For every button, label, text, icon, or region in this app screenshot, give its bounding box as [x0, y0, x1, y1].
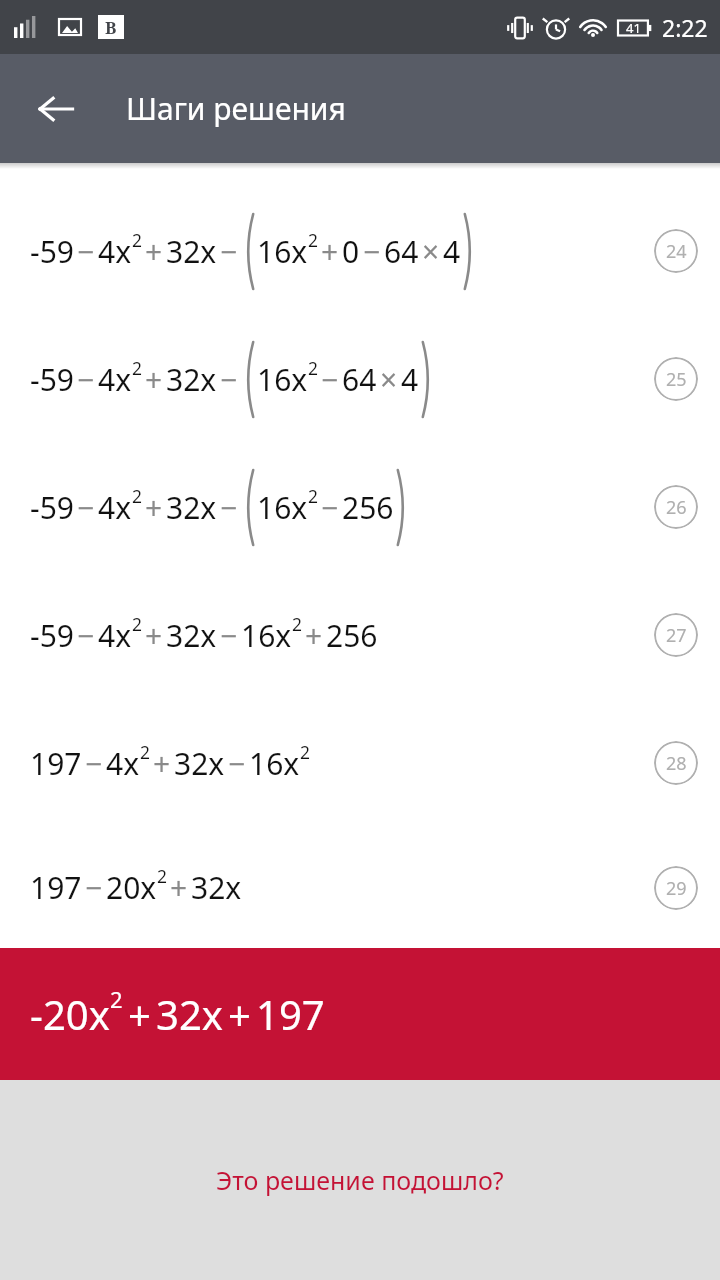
staticText: − [77, 359, 95, 400]
staticText: Это решение подошло? [216, 1163, 504, 1197]
staticText: 16x [257, 359, 308, 400]
staticText: + [128, 987, 151, 1041]
button[interactable]: 29 [654, 866, 698, 910]
staticText: − [321, 487, 339, 528]
staticText: + [170, 867, 188, 908]
staticText: 20x [106, 867, 157, 908]
staticText: 2 [132, 484, 142, 508]
staticText: 24 [666, 239, 687, 264]
staticText: -20x [30, 987, 110, 1041]
staticText: 16x [241, 615, 292, 656]
staticText: 32x [166, 615, 217, 656]
staticText: 64 [384, 231, 419, 272]
staticText: 25 [666, 367, 687, 392]
staticText: 4x [98, 359, 132, 400]
staticText: + [321, 231, 339, 272]
staticText: -59 [30, 359, 74, 400]
staticText: 2 [132, 228, 142, 252]
staticText: 2 [140, 740, 150, 764]
staticText: 256 [326, 615, 378, 656]
staticText: 2 [110, 984, 123, 1014]
staticText: 32x [174, 743, 225, 784]
staticText: 256 [342, 487, 394, 528]
staticText: 4x [98, 231, 132, 272]
staticText: -59 [30, 487, 74, 528]
staticText: − [77, 615, 95, 656]
button[interactable]: Back [22, 75, 90, 143]
staticText: 32x [166, 487, 217, 528]
staticText: 29 [666, 876, 687, 901]
staticText: − [363, 231, 381, 272]
staticText: − [220, 487, 238, 528]
staticText: × [422, 231, 440, 272]
staticText: − [77, 231, 95, 272]
staticText: − [321, 359, 339, 400]
staticText: 2:22 [662, 12, 708, 43]
staticText: 2 [300, 740, 310, 764]
staticText: 2 [157, 864, 167, 888]
staticText: Шаги решения [126, 88, 346, 129]
staticText: 2 [132, 356, 142, 380]
staticText: − [228, 743, 246, 784]
button[interactable]: -20x [0, 948, 720, 1080]
staticText: + [228, 987, 251, 1041]
staticText: 4 [443, 231, 461, 272]
staticText: 2 [132, 612, 142, 636]
staticText: 2 [308, 228, 318, 252]
staticText: + [305, 615, 323, 656]
button[interactable]: -59 [0, 315, 720, 443]
staticText: − [77, 487, 95, 528]
staticText: 16x [249, 743, 300, 784]
button[interactable]: -59 [0, 571, 720, 699]
staticText: -59 [30, 615, 74, 656]
staticText: 4x [98, 615, 132, 656]
staticText: 32x [166, 231, 217, 272]
staticText: 16x [257, 231, 308, 272]
button[interactable]: 26 [654, 485, 698, 529]
staticText: 32x [156, 987, 223, 1041]
staticText: + [145, 231, 163, 272]
button[interactable]: 25 [654, 357, 698, 401]
staticText: + [145, 615, 163, 656]
staticText: 32x [191, 867, 242, 908]
button[interactable]: 197 [0, 827, 720, 948]
staticText: − [220, 615, 238, 656]
staticText: + [145, 359, 163, 400]
staticText: − [85, 743, 103, 784]
button[interactable]: Это решение подошло? [216, 1163, 504, 1197]
button[interactable]: 28 [654, 741, 698, 785]
staticText: − [220, 359, 238, 400]
staticText: 0 [342, 231, 360, 272]
button[interactable]: -59 [0, 443, 720, 571]
button[interactable]: 27 [654, 613, 698, 657]
staticText: + [153, 743, 171, 784]
staticText: 4 [401, 359, 419, 400]
button[interactable]: 24 [654, 229, 698, 273]
staticText: 27 [666, 623, 687, 648]
staticText: 4x [98, 487, 132, 528]
staticText: 16x [257, 487, 308, 528]
staticText: 2 [292, 612, 302, 636]
staticText: + [145, 487, 163, 528]
staticText: 197 [30, 743, 82, 784]
staticText: 64 [342, 359, 377, 400]
button[interactable]: 197 [0, 699, 720, 827]
staticText: 32x [166, 359, 217, 400]
staticText: 26 [666, 495, 687, 520]
staticText: B [105, 16, 117, 39]
staticText: 28 [666, 751, 687, 776]
staticText: × [380, 359, 398, 400]
staticText: − [220, 231, 238, 272]
staticText: 197 [30, 867, 82, 908]
staticText: 2 [308, 356, 318, 380]
staticText: − [85, 867, 103, 908]
staticText: -59 [30, 231, 74, 272]
button[interactable]: -59 [0, 187, 720, 315]
staticText: 2 [308, 484, 318, 508]
staticText: 41 [626, 19, 641, 37]
staticText: 4x [106, 743, 140, 784]
staticText: 197 [256, 987, 325, 1041]
